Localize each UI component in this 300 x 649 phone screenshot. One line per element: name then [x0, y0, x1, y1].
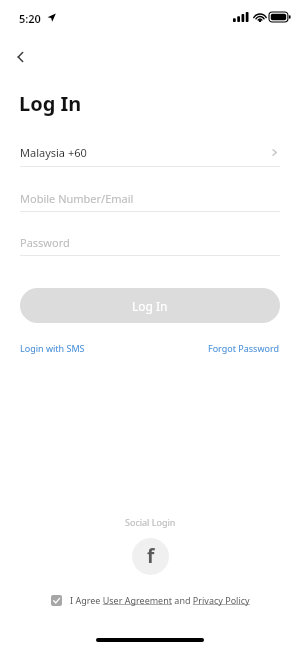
button[interactable]: I Agree User Agreement and Privacy Polic…	[70, 594, 250, 606]
staticText: Social Login	[125, 516, 176, 528]
button[interactable]: Password	[20, 229, 280, 255]
staticText: Malaysia +60	[20, 145, 87, 160]
staticText: Log In	[132, 298, 168, 314]
staticText: 5:20	[19, 11, 41, 26]
button[interactable]: Sign in with Facebook	[132, 538, 169, 575]
button[interactable]: I agree	[51, 595, 62, 606]
staticText: Forgot Password	[208, 342, 280, 354]
staticText: f	[147, 543, 155, 569]
staticText: Mobile Number/Email	[20, 191, 134, 206]
button[interactable]: Log In	[20, 288, 280, 323]
button[interactable]: Mobile Number/Email	[20, 185, 280, 211]
button[interactable]: Back	[4, 40, 38, 74]
button[interactable]: Login with SMS	[20, 340, 85, 355]
staticText: Password	[20, 235, 70, 250]
staticText: Log In	[19, 90, 82, 117]
button[interactable]: Malaysia +60	[20, 139, 280, 166]
staticText: Login with SMS	[20, 342, 85, 354]
button[interactable]: Forgot Password	[190, 340, 280, 355]
staticText: I Agree User Agreement and Privacy Polic…	[70, 594, 250, 606]
